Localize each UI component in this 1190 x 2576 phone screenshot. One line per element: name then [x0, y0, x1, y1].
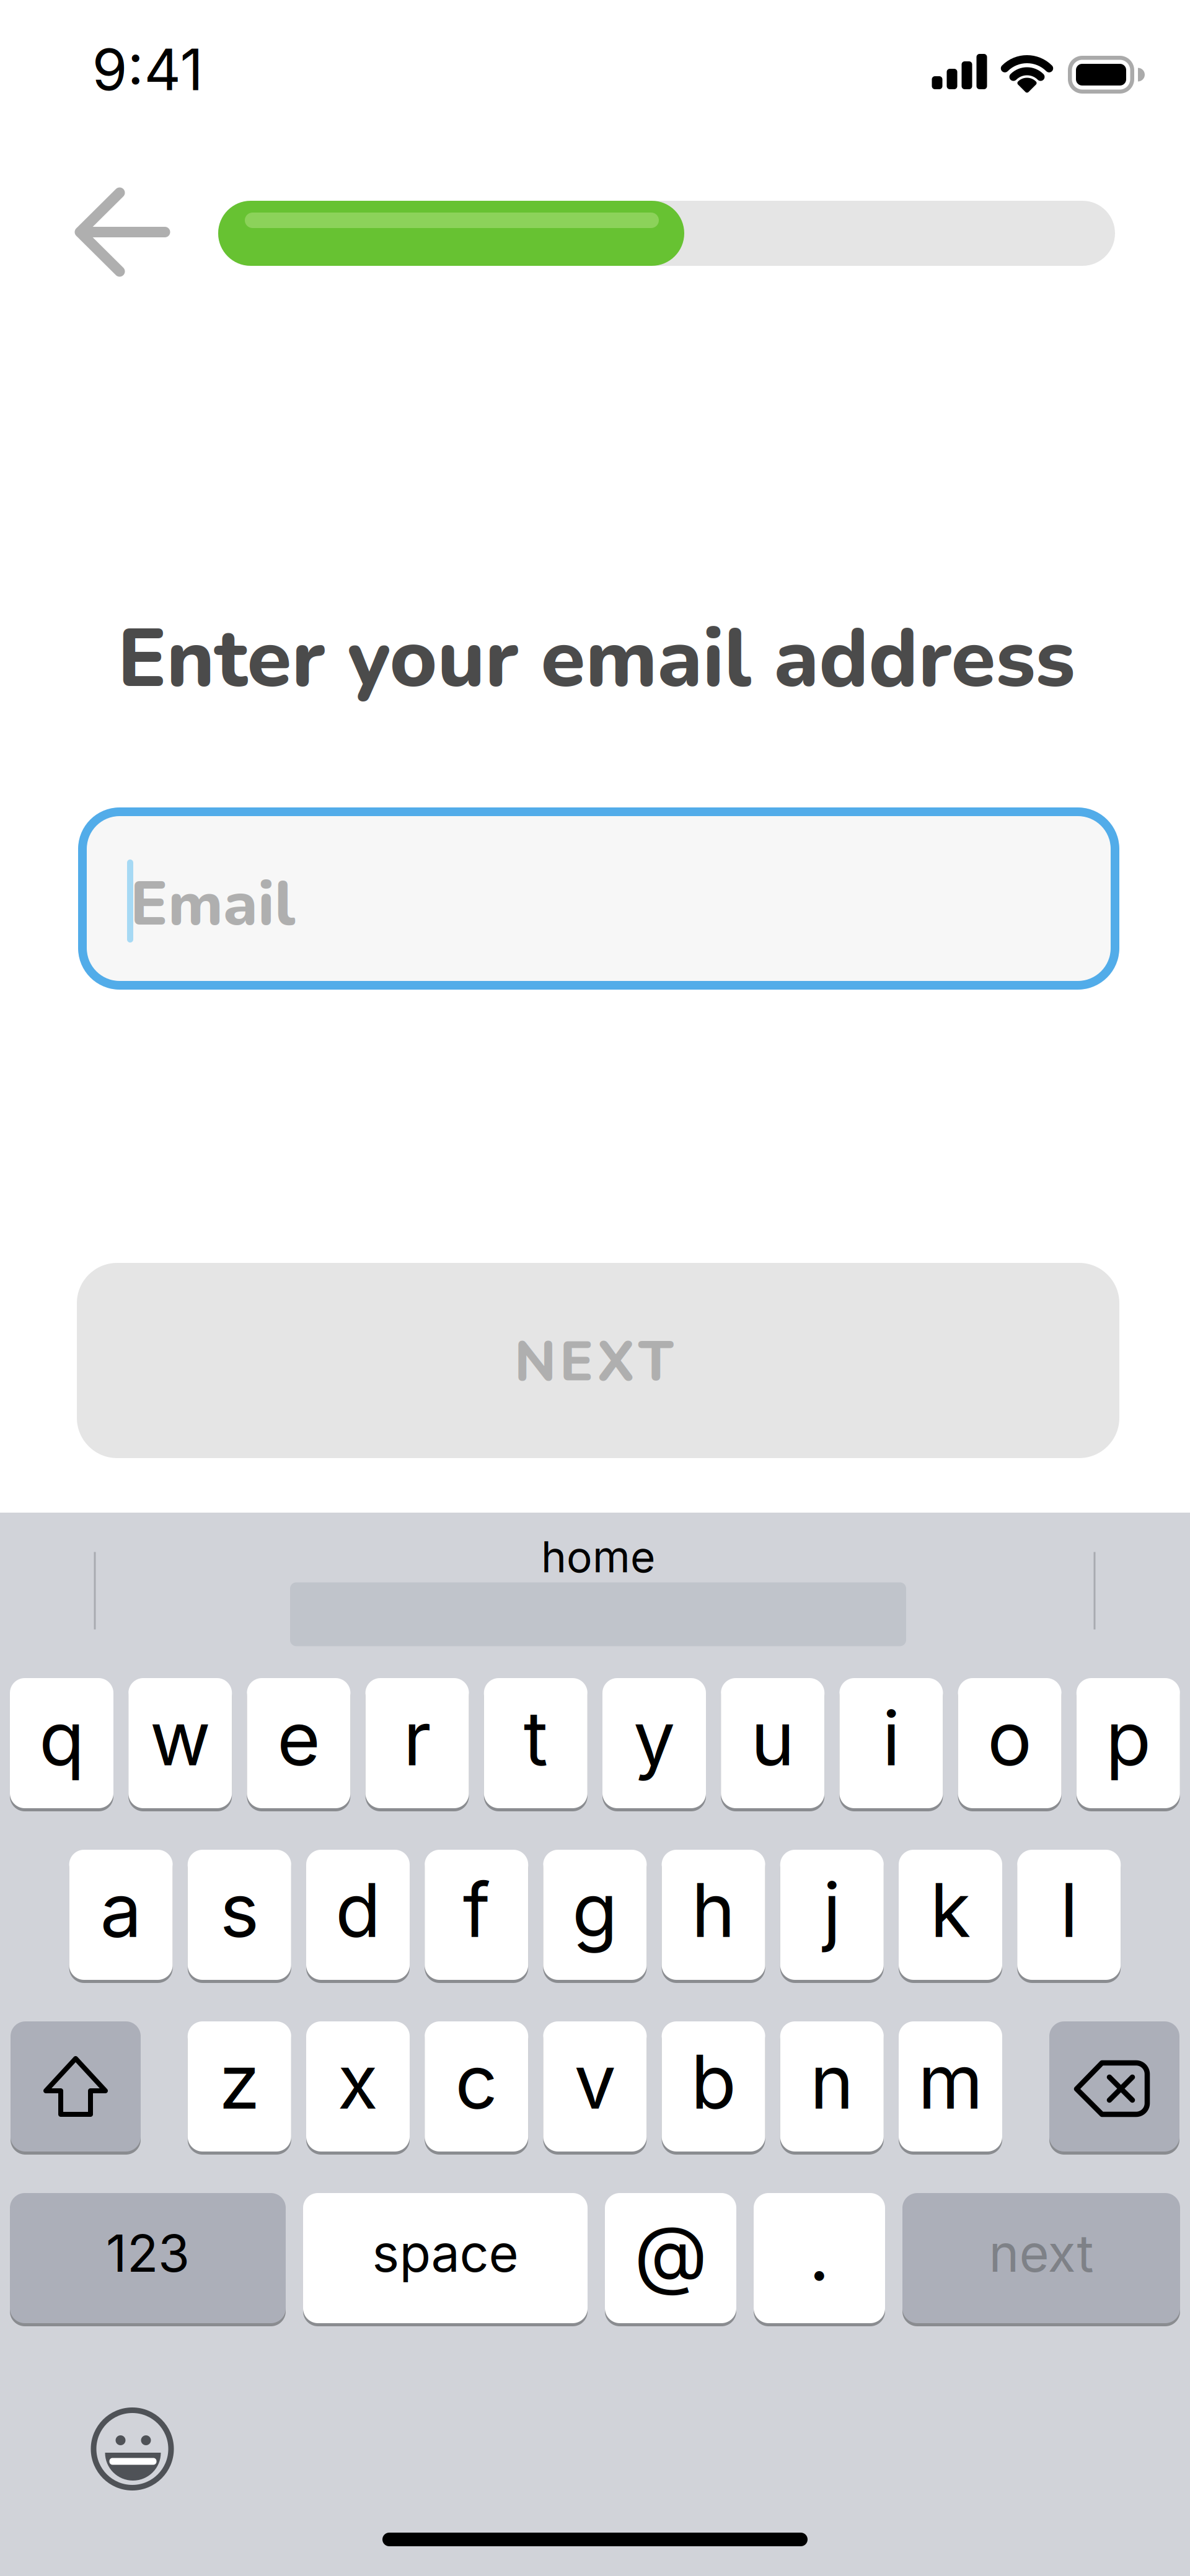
- button[interactable]: e: [247, 1678, 350, 1808]
- staticText: g: [572, 1865, 618, 1955]
- staticText: home: [541, 1531, 655, 1583]
- button[interactable]: 123: [10, 2193, 286, 2323]
- staticText: z: [219, 2037, 260, 2126]
- button[interactable]: Shift: [11, 2021, 141, 2152]
- button[interactable]: k: [899, 1850, 1002, 1980]
- button[interactable]: q: [10, 1678, 113, 1808]
- staticText: next: [989, 2222, 1094, 2284]
- button[interactable]: z: [188, 2021, 291, 2152]
- staticText: .: [809, 2208, 830, 2298]
- staticText: l: [1060, 1865, 1078, 1955]
- staticText: NEXT: [514, 1324, 673, 1400]
- staticText: u: [751, 1693, 795, 1783]
- staticText: d: [335, 1865, 381, 1955]
- button[interactable]: @: [605, 2193, 736, 2323]
- button[interactable]: j: [780, 1850, 884, 1980]
- staticText: h: [691, 1865, 735, 1955]
- staticText: j: [823, 1865, 841, 1955]
- staticText: m: [918, 2037, 983, 2126]
- button[interactable]: Delete: [1049, 2021, 1179, 2152]
- staticText: w: [150, 1693, 211, 1783]
- staticText: q: [39, 1693, 84, 1783]
- button[interactable]: g: [543, 1850, 647, 1980]
- staticText: c: [455, 2037, 498, 2126]
- button[interactable]: p: [1076, 1678, 1180, 1808]
- button[interactable]: space: [303, 2193, 588, 2323]
- staticText: Enter your email address: [117, 604, 1075, 715]
- staticText: i: [882, 1693, 900, 1783]
- staticText: Email: [130, 862, 295, 946]
- button[interactable]: u: [721, 1678, 824, 1808]
- button[interactable]: y: [602, 1678, 706, 1808]
- button[interactable]: a: [69, 1850, 173, 1980]
- staticText: y: [633, 1693, 675, 1783]
- button[interactable]: d: [306, 1850, 410, 1980]
- staticText: o: [987, 1693, 1032, 1783]
- button[interactable]: o: [958, 1678, 1061, 1808]
- button[interactable]: h: [662, 1850, 765, 1980]
- button[interactable]: s: [188, 1850, 291, 1980]
- staticText: space: [372, 2222, 518, 2284]
- button[interactable]: next: [902, 2193, 1180, 2323]
- button[interactable]: l: [1017, 1850, 1121, 1980]
- button[interactable]: x: [306, 2021, 410, 2152]
- staticText: x: [337, 2037, 378, 2126]
- staticText: k: [930, 1865, 971, 1955]
- staticText: n: [810, 2037, 854, 2126]
- staticText: 9:41: [92, 35, 203, 104]
- staticText: p: [1106, 1693, 1151, 1783]
- staticText: e: [277, 1693, 320, 1783]
- button[interactable]: Back: [69, 186, 175, 279]
- staticText: s: [220, 1865, 259, 1955]
- button[interactable]: t: [484, 1678, 587, 1808]
- staticText: @: [634, 2207, 707, 2299]
- staticText: a: [100, 1865, 142, 1955]
- button[interactable]: Emoji: [83, 2399, 182, 2499]
- button[interactable]: c: [425, 2021, 528, 2152]
- button[interactable]: w: [128, 1678, 232, 1808]
- button[interactable]: .: [754, 2193, 885, 2323]
- button[interactable]: f: [425, 1850, 528, 1980]
- button[interactable]: n: [780, 2021, 884, 2152]
- staticText: 123: [106, 2222, 190, 2284]
- button[interactable]: m: [899, 2021, 1002, 2152]
- staticText: b: [691, 2037, 736, 2126]
- button[interactable]: Email: [78, 807, 1119, 990]
- button[interactable]: i: [839, 1678, 943, 1808]
- staticText: f: [463, 1865, 490, 1955]
- staticText: r: [403, 1693, 431, 1783]
- button[interactable]: b: [662, 2021, 765, 2152]
- button[interactable]: NEXT: [77, 1263, 1119, 1458]
- staticText: t: [524, 1693, 548, 1783]
- staticText: v: [574, 2037, 616, 2126]
- button[interactable]: r: [365, 1678, 469, 1808]
- button[interactable]: v: [543, 2021, 647, 2152]
